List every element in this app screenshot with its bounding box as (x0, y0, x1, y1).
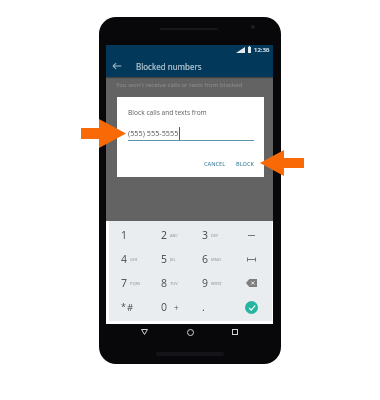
button[interactable]: Back (137, 325, 151, 339)
staticText: 6 (202, 252, 209, 266)
button[interactable]: 6 (190, 247, 231, 271)
staticText: 3 (202, 228, 209, 242)
staticText: MNO (211, 257, 221, 262)
button[interactable]: Navigate up (106, 55, 128, 77)
staticText: GHI (130, 257, 138, 262)
button[interactable]: 4 (109, 247, 149, 271)
staticText: 8 (161, 276, 168, 290)
button[interactable]: Delete (231, 271, 272, 295)
staticText: You won't receive calls or texts from bl… (116, 80, 243, 88)
staticText: 12:36 (254, 46, 270, 54)
staticText: # (127, 301, 134, 314)
button[interactable]: 1 (109, 223, 149, 247)
button[interactable]: 0 (149, 295, 190, 319)
button[interactable]: 8 (149, 271, 190, 295)
staticText: TUV (170, 281, 178, 286)
staticText: 1 (121, 228, 128, 242)
other: Callout arrow pointing to the Block butt… (260, 150, 304, 176)
staticText: 9 (202, 276, 209, 290)
staticText: . (202, 300, 205, 314)
button[interactable]: . (190, 295, 231, 319)
staticText: + (174, 302, 179, 313)
staticText: (555) 555-5555 (128, 128, 179, 138)
other: Callout arrow pointing to the phone numb… (81, 119, 126, 148)
staticText: * (121, 300, 126, 312)
button[interactable]: Home (183, 325, 197, 339)
staticText: ABC (170, 233, 178, 238)
button[interactable]: * (109, 295, 149, 319)
button[interactable]: 2 (149, 223, 190, 247)
staticText: 2 (161, 228, 168, 242)
button[interactable]: Recent apps (228, 325, 242, 339)
staticText: Blocked numbers (136, 61, 202, 72)
button[interactable]: 3 (190, 223, 231, 247)
staticText: 0 (161, 300, 168, 314)
button[interactable]: 9 (190, 271, 231, 295)
staticText: 4 (121, 252, 128, 266)
staticText: BLOCK (236, 160, 255, 168)
button[interactable]: 7 (109, 271, 149, 295)
button[interactable]: Wait (231, 247, 272, 271)
button[interactable]: Call (231, 295, 272, 319)
staticText: WXYZ (211, 281, 222, 286)
button[interactable]: 5 (149, 247, 190, 271)
staticText: 5 (161, 252, 168, 266)
staticText: CANCEL (204, 160, 226, 168)
staticText: JKL (170, 257, 176, 262)
button[interactable]: Pause (231, 223, 272, 247)
staticText: DEF (211, 233, 219, 238)
staticText: PQRS (130, 281, 141, 286)
button[interactable]: CANCEL (201, 157, 229, 171)
button[interactable]: BLOCK (233, 157, 258, 171)
staticText: Block calls and texts from (128, 108, 207, 117)
staticText: 7 (121, 276, 128, 290)
